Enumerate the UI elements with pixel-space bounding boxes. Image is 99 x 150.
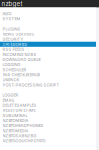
- staticText: EMAIL: [3, 98, 15, 103]
- button[interactable]: DOWNLOAD QUEUE: [0, 57, 96, 62]
- staticText: PLUGINS: [3, 27, 21, 31]
- button[interactable]: NZBTOMEDIA: [0, 118, 96, 123]
- button[interactable]: EMAIL: [0, 98, 96, 103]
- staticText: SECURITY: [3, 37, 24, 42]
- button[interactable]: PLUGINS: [0, 26, 96, 32]
- button[interactable]: NZBTOSABNZBD: [0, 133, 96, 138]
- staticText: NEWS SERVERS: [3, 32, 35, 36]
- staticText: NZBTOHEADPHONES: [3, 123, 44, 128]
- button[interactable]: NEWS SERVERS: [0, 31, 96, 37]
- button[interactable]: NZBTOMEDIA: [0, 128, 96, 133]
- staticText: RESETDATETIME: [3, 108, 36, 113]
- staticText: NZBTOMEDIA: [3, 128, 29, 133]
- button[interactable]: INFO: [0, 11, 96, 16]
- staticText: RSS FEEDS: [3, 47, 25, 52]
- staticText: POST-PROCESSING SCRIPT: [3, 82, 60, 87]
- button[interactable]: CATEGORIES: [0, 42, 96, 47]
- button[interactable]: SYSTEM: [0, 16, 96, 21]
- staticText: NZBTOMEDIA: [3, 118, 29, 123]
- staticText: LOGGER: [3, 93, 19, 97]
- button[interactable]: DELETESAMPLES: [0, 103, 96, 108]
- button[interactable]: RESETDATETIME: [0, 108, 96, 113]
- button[interactable]: UNPACK: [0, 77, 96, 82]
- staticText: nzbget: [1, 0, 22, 7]
- staticText: UNPACK: [3, 77, 20, 82]
- button[interactable]: POST-PROCESSING SCRIPT: [0, 82, 96, 87]
- staticText: INCOMING NZBS: [3, 52, 37, 57]
- staticText: INFO: [3, 11, 12, 16]
- staticText: DOWNLOAD QUEUE: [3, 57, 41, 62]
- staticText: NZBTOCOUCHPOTATO: [3, 138, 46, 143]
- button[interactable]: SCHEDULER: [0, 67, 96, 72]
- staticText: CATEGORIES: [3, 42, 28, 47]
- button[interactable]: NZBTOHEADPHONES: [0, 123, 96, 128]
- button[interactable]: LOGGER: [0, 93, 96, 98]
- staticText: NZBTOSABNZBD: [3, 133, 37, 138]
- button[interactable]: PAR CHECK/REPAIR: [0, 72, 96, 77]
- button[interactable]: RSS FEEDS: [0, 47, 96, 52]
- button[interactable]: SECURITY: [0, 37, 96, 42]
- staticText: PAR CHECK/REPAIR: [3, 72, 41, 77]
- staticText: SYSTEM: [3, 16, 21, 21]
- staticText: SUBLIMINAL: [3, 113, 28, 118]
- staticText: SCHEDULER: [3, 67, 27, 72]
- button[interactable]: INCOMING NZBS: [0, 52, 96, 57]
- button[interactable]: SUBLIMINAL: [0, 113, 96, 118]
- button[interactable]: LOGGING: [0, 62, 96, 67]
- staticText: DELETESAMPLES: [3, 103, 37, 108]
- staticText: LOGGING: [3, 62, 21, 67]
- button[interactable]: NZBTOCOUCHPOTATO: [0, 138, 96, 143]
